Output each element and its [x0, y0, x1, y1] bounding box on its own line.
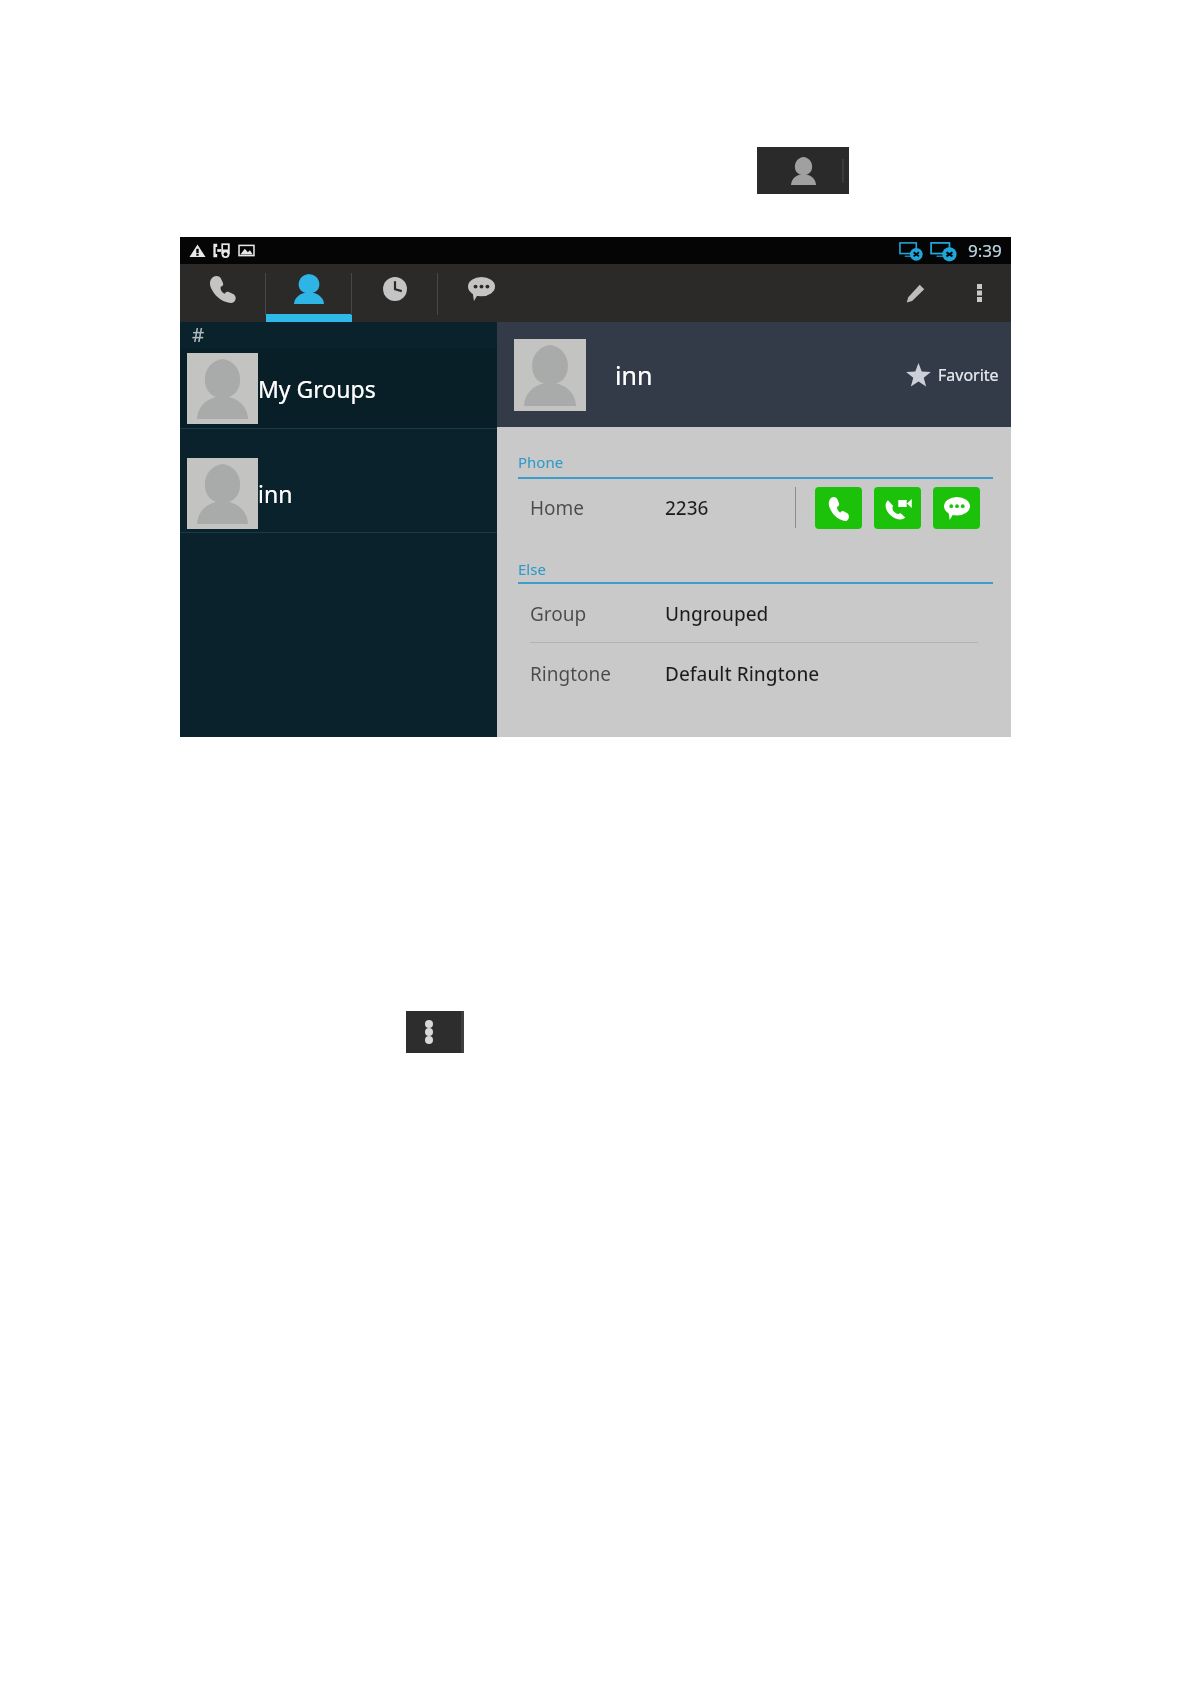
- button[interactable]: Message: [933, 487, 980, 529]
- staticText: Else: [518, 559, 546, 579]
- staticText: 2236: [665, 495, 709, 521]
- button[interactable]: Video call: [874, 487, 921, 529]
- button[interactable]: Contacts icon: [757, 147, 849, 194]
- staticText: Phone: [518, 452, 564, 472]
- button[interactable]: Contacts tab: [266, 264, 352, 322]
- staticText: Group: [530, 601, 587, 627]
- button[interactable]: Call log tab: [352, 264, 438, 322]
- button[interactable]: Messages tab: [438, 264, 524, 322]
- button[interactable]: Group: [497, 584, 1011, 644]
- staticText: Default Ringtone: [665, 661, 820, 687]
- button[interactable]: Call: [815, 487, 862, 529]
- button[interactable]: More options: [947, 264, 1011, 322]
- staticText: Home: [530, 495, 585, 521]
- staticText: inn: [615, 358, 653, 392]
- staticText: 9:39: [968, 239, 1002, 262]
- button[interactable]: Favorite: [902, 362, 1003, 387]
- staticText: My Groups: [258, 373, 376, 404]
- button[interactable]: More options: [406, 1011, 464, 1053]
- staticText: inn: [258, 478, 293, 509]
- staticText: Ringtone: [530, 661, 611, 687]
- button[interactable]: Edit: [883, 264, 947, 322]
- staticText: Ungrouped: [665, 601, 769, 627]
- staticText: #: [192, 322, 205, 348]
- button[interactable]: My Groups: [180, 348, 497, 428]
- staticText: Favorite: [938, 364, 999, 386]
- button[interactable]: inn: [180, 429, 497, 532]
- button[interactable]: Ringtone: [497, 644, 1011, 704]
- button[interactable]: Dialer tab: [180, 264, 266, 322]
- button[interactable]: Home: [497, 477, 1011, 538]
